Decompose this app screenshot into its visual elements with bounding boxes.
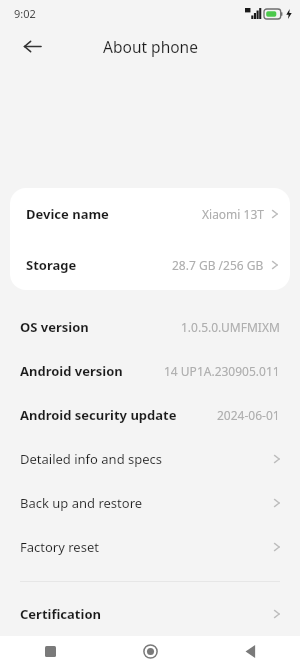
button[interactable]: Back — [14, 28, 50, 64]
button[interactable]: Detailed info and specs — [0, 437, 300, 481]
button[interactable]: OS version — [0, 305, 300, 349]
staticText: Detailed info and specs — [20, 450, 163, 468]
staticText: 1.0.5.0.UMFMIXM — [181, 319, 280, 335]
staticText: 9:02 — [14, 6, 36, 21]
staticText: Device name — [26, 205, 109, 223]
staticText: Android security update — [20, 406, 177, 424]
button[interactable]: Recent apps — [0, 636, 100, 667]
staticText: Xiaomi 13T — [202, 206, 264, 222]
staticText: Certification — [20, 605, 101, 623]
staticText: Storage — [26, 256, 77, 274]
button[interactable]: Android version — [0, 349, 300, 393]
staticText: Back up and restore — [20, 494, 143, 512]
staticText: About phone — [103, 36, 198, 57]
button[interactable]: Device name — [10, 188, 290, 239]
button[interactable]: Back up and restore — [0, 481, 300, 525]
staticText: 28.7 GB /256 GB — [172, 257, 264, 273]
staticText: 14 UP1A.230905.011 — [164, 363, 280, 379]
button[interactable]: Storage — [10, 239, 290, 290]
button[interactable]: Factory reset — [0, 525, 300, 569]
staticText: OS version — [20, 318, 89, 336]
staticText: 2024-06-01 — [217, 407, 280, 423]
button[interactable]: Back — [200, 636, 300, 667]
staticText: Factory reset — [20, 538, 99, 556]
staticText: Android version — [20, 362, 123, 380]
button[interactable]: Android security update — [0, 393, 300, 437]
button[interactable]: Certification — [0, 592, 300, 636]
button[interactable]: Home — [100, 636, 200, 667]
